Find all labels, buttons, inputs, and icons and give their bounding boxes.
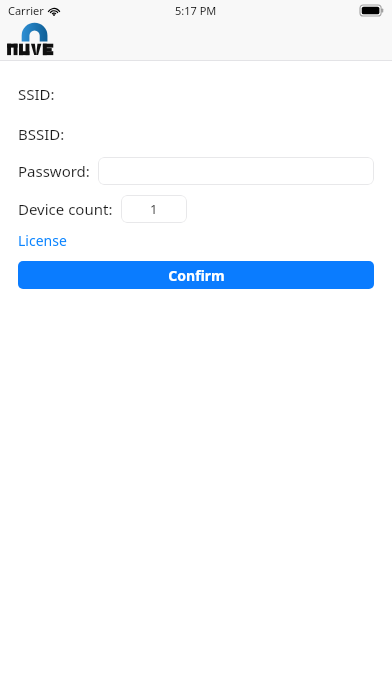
staticText: 5:17 PM bbox=[175, 3, 217, 18]
button[interactable]: Password input bbox=[98, 157, 374, 185]
staticText: SSID: bbox=[18, 84, 55, 104]
staticText: 1 bbox=[150, 200, 158, 218]
button[interactable]: License bbox=[18, 229, 67, 252]
button[interactable]: nuve logo bbox=[6, 22, 62, 58]
button[interactable]: 1 bbox=[121, 195, 187, 223]
staticText: Password: bbox=[18, 161, 90, 181]
button[interactable]: Confirm bbox=[18, 261, 374, 289]
staticText: Confirm bbox=[168, 266, 225, 285]
staticText: BSSID: bbox=[18, 124, 65, 144]
staticText: License bbox=[18, 231, 67, 250]
staticText: Device count: bbox=[18, 199, 113, 219]
staticText: Carrier bbox=[8, 3, 44, 18]
